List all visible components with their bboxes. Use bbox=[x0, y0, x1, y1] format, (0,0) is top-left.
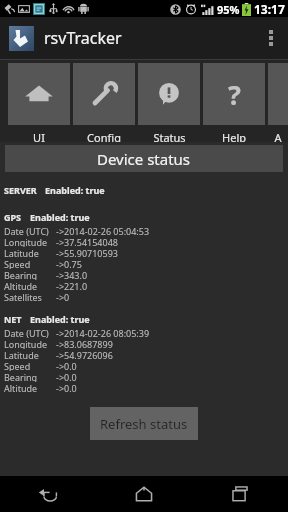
staticText: Bearing bbox=[4, 371, 38, 382]
staticText: ->83.0687899 bbox=[56, 338, 113, 349]
staticText: Enabled: true bbox=[45, 184, 105, 196]
staticText: ->0.0 bbox=[56, 382, 77, 393]
staticText: ->0 bbox=[56, 291, 70, 302]
button[interactable]: Recent apps bbox=[192, 476, 288, 512]
staticText: Speed bbox=[4, 258, 31, 269]
staticText: Satellites bbox=[4, 291, 42, 302]
staticText: Date (UTC) bbox=[4, 327, 49, 338]
button[interactable]: Back bbox=[0, 476, 96, 512]
staticText: ->2014-02-26 08:05:39 bbox=[56, 327, 150, 338]
staticText: ->0.0 bbox=[56, 360, 77, 371]
staticText: Longitude bbox=[4, 236, 48, 247]
staticText: Longitude bbox=[4, 338, 48, 349]
staticText: UI bbox=[33, 130, 45, 142]
button[interactable]: Device status bbox=[5, 145, 283, 172]
staticText: Bearing bbox=[4, 269, 38, 280]
staticText: SERVER bbox=[4, 184, 37, 196]
staticText: ->0.0 bbox=[56, 371, 77, 382]
staticText: Latitude bbox=[4, 349, 39, 360]
staticText: Refresh status bbox=[100, 415, 188, 433]
staticText: ->55.90710593 bbox=[56, 247, 118, 258]
staticText: 13:17 bbox=[254, 1, 285, 17]
staticText: Enabled: true bbox=[30, 211, 90, 223]
staticText: Altitude bbox=[4, 280, 38, 291]
staticText: rsvTracker bbox=[44, 27, 122, 49]
button[interactable]: ? bbox=[203, 63, 265, 142]
staticText: Speed bbox=[4, 360, 31, 371]
staticText: NET bbox=[4, 313, 22, 325]
staticText: Config bbox=[87, 130, 121, 142]
staticText: ->37.54154048 bbox=[56, 236, 118, 247]
staticText: ->221.0 bbox=[56, 280, 88, 291]
staticText: 95% bbox=[217, 2, 240, 17]
staticText: Latitude bbox=[4, 247, 39, 258]
staticText: Enabled: true bbox=[30, 313, 90, 325]
staticText: Date (UTC) bbox=[4, 225, 49, 236]
staticText: ->343.0 bbox=[56, 269, 88, 280]
button[interactable]: Refresh status bbox=[90, 407, 198, 440]
staticText: ? bbox=[228, 76, 241, 113]
button[interactable]: A bbox=[268, 63, 288, 142]
staticText: Help bbox=[222, 130, 246, 142]
staticText: ->0.75 bbox=[56, 258, 82, 269]
button[interactable]: Status bbox=[138, 63, 200, 142]
staticText: ->54.9726096 bbox=[56, 349, 113, 360]
button[interactable]: Home bbox=[96, 476, 192, 512]
staticText: Altitude bbox=[4, 382, 38, 393]
button[interactable]: UI bbox=[8, 63, 70, 142]
button[interactable]: Config bbox=[73, 63, 135, 142]
staticText: Device status bbox=[97, 149, 191, 169]
staticText: GPS bbox=[4, 211, 22, 223]
staticText: ->2014-02-26 05:04:53 bbox=[56, 225, 150, 236]
button[interactable]: More options bbox=[254, 17, 288, 59]
staticText: Status bbox=[153, 130, 186, 142]
staticText: A bbox=[274, 130, 282, 142]
